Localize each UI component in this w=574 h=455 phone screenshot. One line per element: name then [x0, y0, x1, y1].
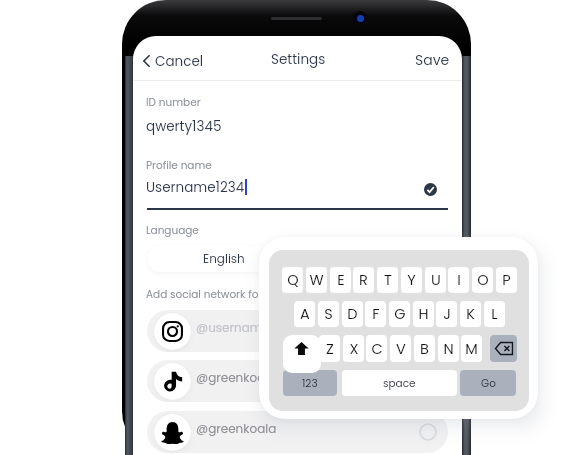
button[interactable]: space	[342, 370, 457, 396]
staticText: Q	[287, 270, 299, 290]
staticText: ID number	[146, 95, 201, 110]
staticText: @greenkoala	[196, 369, 277, 386]
button[interactable]: J	[436, 301, 457, 327]
staticText: Username1234	[146, 178, 245, 197]
button[interactable]: B	[414, 335, 435, 362]
staticText: @greenkoala	[196, 420, 277, 437]
button[interactable]: Shift	[283, 335, 321, 373]
button[interactable]: H	[413, 301, 434, 327]
staticText: qwerty1345	[146, 117, 222, 136]
staticText: @username	[196, 319, 270, 336]
staticText: G	[394, 304, 406, 324]
staticText: Y	[407, 270, 416, 290]
button[interactable]: Save	[410, 47, 450, 69]
staticText: F	[372, 304, 380, 324]
staticText: Profile name	[146, 158, 212, 173]
button[interactable]: N	[438, 335, 459, 362]
button[interactable]: Cancel	[139, 47, 213, 69]
staticText: D	[347, 304, 358, 324]
staticText: I	[457, 270, 461, 290]
button[interactable]: L	[484, 301, 505, 327]
button[interactable]: Go	[460, 370, 516, 396]
staticText: space	[383, 376, 416, 391]
button[interactable]: @username	[147, 310, 448, 352]
button[interactable]: M	[461, 335, 482, 362]
staticText: J	[443, 304, 451, 324]
button[interactable]: X	[343, 335, 364, 362]
staticText: W	[309, 270, 324, 290]
button[interactable]: Backspace	[490, 335, 517, 362]
button[interactable]: P	[496, 267, 517, 293]
button[interactable]: 123	[283, 370, 337, 396]
staticText: Add social network for subscribers	[146, 287, 326, 302]
staticText: T	[384, 270, 392, 290]
staticText: Cancel	[155, 52, 204, 71]
button[interactable]: @greenkoala	[147, 360, 448, 402]
staticText: V	[396, 339, 406, 359]
staticText: Settings	[271, 50, 326, 69]
staticText: R	[359, 270, 368, 290]
staticText: Z	[326, 339, 334, 359]
button[interactable]: U	[425, 267, 446, 293]
staticText: B	[420, 339, 429, 359]
button[interactable]: English	[147, 245, 300, 272]
staticText: K	[466, 304, 475, 324]
staticText: H	[418, 304, 429, 324]
button[interactable]: V	[390, 335, 411, 362]
button[interactable]: K	[460, 301, 481, 327]
staticText: N	[443, 339, 454, 359]
staticText: English	[203, 250, 245, 267]
button[interactable]: D	[342, 301, 363, 327]
staticText: L	[491, 304, 498, 324]
button[interactable]: Y	[401, 267, 422, 293]
button[interactable]: S	[318, 301, 339, 327]
button[interactable]: A	[294, 301, 315, 327]
button[interactable]: E	[330, 267, 351, 293]
staticText: S	[324, 304, 333, 324]
button[interactable]: Z	[319, 335, 340, 362]
button[interactable]: Q	[282, 267, 303, 293]
staticText: X	[349, 339, 359, 359]
button[interactable]: @greenkoala	[147, 411, 448, 453]
button[interactable]: O	[472, 267, 493, 293]
staticText: Language	[146, 223, 199, 238]
button[interactable]: R	[353, 267, 374, 293]
button[interactable]: C	[366, 335, 387, 362]
staticText: 123	[302, 376, 318, 391]
button[interactable]: F	[365, 301, 386, 327]
staticText: Save	[415, 50, 450, 70]
staticText: C	[371, 339, 383, 359]
staticText: M	[465, 339, 478, 359]
staticText: E	[337, 270, 345, 290]
button[interactable]: G	[389, 301, 410, 327]
staticText: P	[502, 270, 511, 290]
button[interactable]: T	[377, 267, 398, 293]
staticText: U	[431, 270, 441, 290]
staticText: Go	[481, 376, 496, 391]
staticText: O	[477, 270, 489, 290]
staticText: A	[300, 304, 310, 324]
button[interactable]: W	[306, 267, 327, 293]
button[interactable]: I	[448, 267, 469, 293]
